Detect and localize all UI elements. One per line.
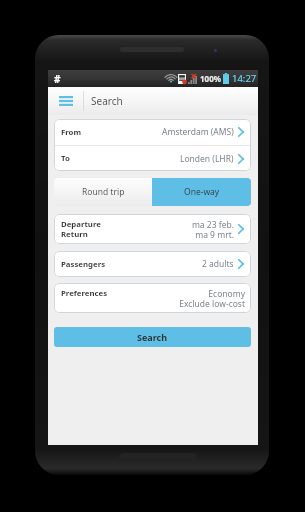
staticText: 14:27 xyxy=(232,72,257,85)
staticText: From xyxy=(61,127,82,138)
staticText: ma 23 feb. ma 9 mrt. xyxy=(191,219,234,240)
staticText: Amsterdam (AMS) xyxy=(162,126,234,138)
button[interactable]: Departure Return xyxy=(54,214,251,244)
staticText: Search xyxy=(91,94,123,108)
button[interactable]: To xyxy=(54,146,251,171)
staticText: Preferences xyxy=(61,288,108,308)
staticText: To xyxy=(61,153,70,164)
staticText: Economy Exclude low-cost xyxy=(179,288,245,309)
staticText: Passengers xyxy=(61,259,106,270)
button[interactable]: From xyxy=(54,119,251,145)
button[interactable]: Preferences xyxy=(54,283,251,313)
button[interactable]: Round trip xyxy=(54,178,152,206)
button[interactable]: Passengers xyxy=(54,251,251,277)
staticText: Search xyxy=(137,331,168,343)
staticText: 2 adults xyxy=(202,258,234,270)
staticText: Round trip xyxy=(82,186,125,198)
staticText: One-way xyxy=(184,186,220,198)
staticText: 100% xyxy=(200,73,221,84)
staticText: Departure Return xyxy=(61,219,101,239)
staticText: # xyxy=(54,72,61,86)
button[interactable]: Search xyxy=(54,327,251,347)
button[interactable]: One-way xyxy=(152,178,251,206)
staticText: Londen (LHR) xyxy=(180,153,234,165)
button[interactable]: Open navigation menu xyxy=(48,87,83,115)
